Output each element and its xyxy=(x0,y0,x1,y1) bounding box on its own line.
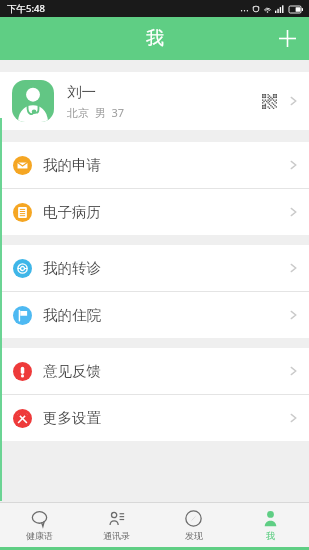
button[interactable]: 电子病历 xyxy=(0,189,309,235)
staticText: 我 xyxy=(146,27,164,50)
button[interactable]: 通讯录 xyxy=(78,503,155,547)
staticText: 刘一 xyxy=(67,83,96,101)
staticText: 下午5:48 xyxy=(7,2,45,15)
button[interactable]: 我 xyxy=(232,503,309,547)
button[interactable]: 我的住院 xyxy=(0,292,309,338)
staticText: 我的住院 xyxy=(43,306,290,324)
staticText: 我的转诊 xyxy=(43,259,290,277)
staticText: 发现 xyxy=(185,530,203,541)
button[interactable]: Add xyxy=(266,17,309,60)
staticText: 健康语 xyxy=(26,530,53,541)
staticText: 我 xyxy=(266,530,275,541)
staticText: 更多设置 xyxy=(43,409,290,427)
staticText: 我的申请 xyxy=(43,156,290,174)
button[interactable]: 健康语 xyxy=(0,503,78,547)
button[interactable]: 意见反馈 xyxy=(0,348,309,394)
staticText: 电子病历 xyxy=(43,203,290,221)
button[interactable]: 刘一 xyxy=(0,72,309,130)
staticText: 北京 男 37 xyxy=(67,105,125,120)
button[interactable]: 我的转诊 xyxy=(0,245,309,291)
staticText: 通讯录 xyxy=(103,530,130,541)
button[interactable]: 发现 xyxy=(155,503,232,547)
button[interactable]: 我的申请 xyxy=(0,142,309,188)
button[interactable]: 更多设置 xyxy=(0,395,309,441)
staticText: 意见反馈 xyxy=(43,362,290,380)
button[interactable]: QR code xyxy=(256,88,282,114)
